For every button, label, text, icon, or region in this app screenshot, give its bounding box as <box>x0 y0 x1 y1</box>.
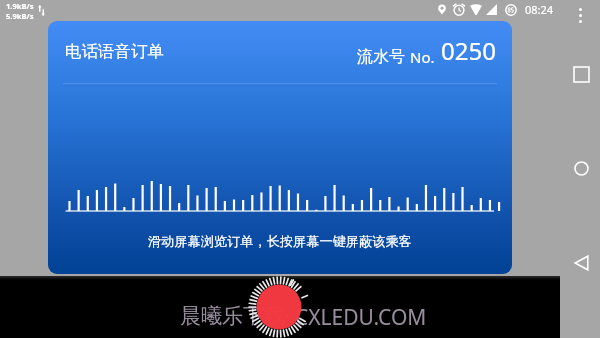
staticText: No. <box>410 47 435 67</box>
staticText: 0250 <box>441 34 496 67</box>
button[interactable]: 电话语音订单 <box>48 21 512 274</box>
staticText: 流水号 <box>357 47 405 67</box>
staticText: 1.9kB/s <box>6 1 34 11</box>
staticText: 电话语音订单 <box>65 41 164 62</box>
button[interactable]: Recents <box>574 67 589 82</box>
staticText: 滑动屏幕浏览订单，长按屏幕一键屏蔽该乘客 <box>148 233 412 250</box>
button[interactable]: More options <box>579 8 582 23</box>
staticText: 晨曦乐下载 <box>180 303 285 329</box>
staticText: 5.9kB/s <box>6 11 34 21</box>
staticText: CXLEDU.COM <box>295 303 427 332</box>
button[interactable]: Home <box>574 161 589 176</box>
button[interactable]: Back <box>574 255 590 271</box>
staticText: 08:24 <box>525 2 554 17</box>
